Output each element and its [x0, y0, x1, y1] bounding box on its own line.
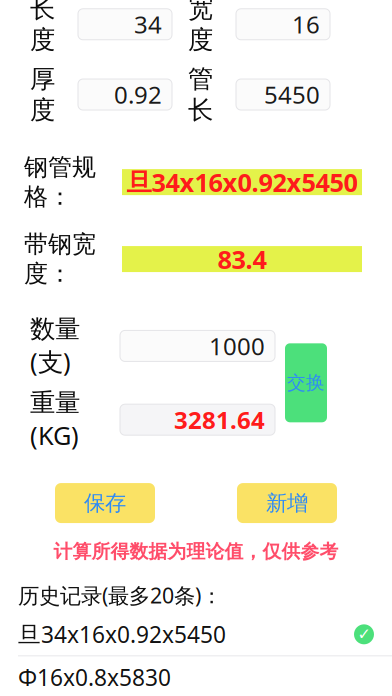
staticText: 管长: [188, 63, 213, 126]
staticText: 3281.64: [174, 404, 265, 436]
staticText: 旦34x16x0.92x5450: [126, 165, 357, 199]
staticText: 5450: [264, 79, 320, 110]
staticText: 1000: [209, 330, 265, 362]
staticText: 钢管规格：: [24, 153, 96, 212]
staticText: 83.4: [217, 242, 266, 276]
staticText: ✓: [357, 625, 370, 643]
button[interactable]: 交换: [285, 343, 327, 422]
staticText: 0.92: [114, 79, 162, 110]
staticText: 长度: [30, 0, 55, 55]
button[interactable]: Φ16x0.8x5830: [0, 656, 392, 696]
button[interactable]: 旦34x16x0.92x5450: [0, 613, 392, 656]
staticText: Φ16x0.8x5830: [18, 662, 171, 692]
staticText: 16: [292, 8, 320, 40]
staticText: 带钢宽度：: [24, 230, 96, 289]
staticText: 34: [134, 8, 162, 40]
staticText: 新增: [266, 490, 308, 516]
staticText: 宽度: [188, 0, 213, 55]
button[interactable]: 新增: [237, 483, 337, 523]
staticText: 旦34x16x0.92x5450: [18, 619, 226, 649]
staticText: 交换: [287, 371, 325, 394]
staticText: 数量(支): [30, 314, 80, 378]
staticText: 历史记录(最多20条)：: [18, 581, 222, 609]
staticText: 保存: [84, 490, 126, 516]
staticText: 厚度: [30, 63, 55, 126]
staticText: 重量(KG): [30, 387, 80, 452]
button[interactable]: 保存: [55, 483, 155, 523]
staticText: 计算所得数据为理论值，仅供参考: [53, 540, 338, 563]
